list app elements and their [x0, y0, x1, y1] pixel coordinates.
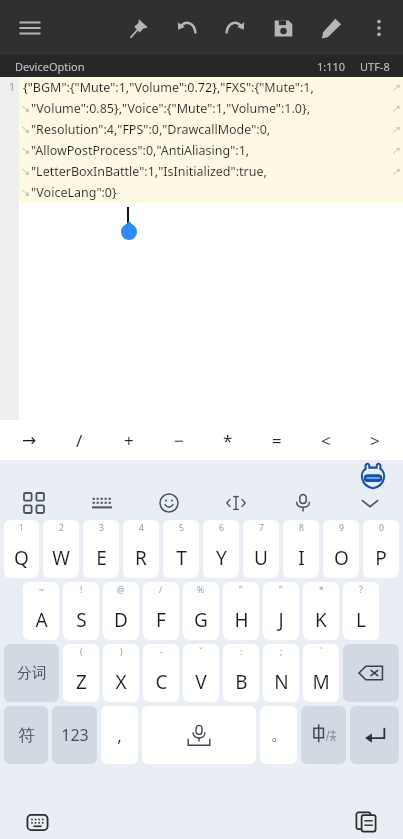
- button[interactable]: /: [54, 420, 104, 460]
- button[interactable]: ,: [101, 706, 138, 764]
- button[interactable]: Voice input: [269, 486, 336, 520]
- button[interactable]: 。: [260, 706, 297, 764]
- staticText: *: [319, 584, 324, 596]
- staticText: Q: [14, 545, 29, 571]
- button[interactable]: ": [263, 582, 299, 640]
- staticText: +: [124, 429, 134, 452]
- staticText: "Volume":0.85},"Voice":{"Mute":1,"Volume…: [31, 100, 311, 117]
- staticText: →: [22, 430, 37, 450]
- button[interactable]: →: [4, 420, 54, 460]
- button[interactable]: Keyboard layout: [68, 486, 135, 520]
- button[interactable]: ;: [263, 644, 299, 702]
- staticText: M: [312, 669, 330, 695]
- button[interactable]: 8: [283, 520, 319, 578]
- button[interactable]: =: [252, 420, 301, 460]
- staticText: 7: [259, 522, 264, 534]
- button[interactable]: ˇ: [183, 644, 219, 702]
- staticText: *: [223, 429, 233, 452]
- staticText: B: [235, 669, 248, 695]
- staticText: ;: [280, 646, 283, 658]
- staticText: H: [234, 607, 249, 633]
- button[interactable]: -: [143, 644, 179, 702]
- staticText: <: [321, 429, 331, 452]
- button[interactable]: %: [183, 582, 219, 640]
- button[interactable]: Enter: [350, 706, 399, 764]
- staticText: 9: [339, 522, 344, 534]
- button[interactable]: *: [303, 582, 339, 640]
- button[interactable]: Backspace: [343, 644, 399, 702]
- button[interactable]: 0: [363, 520, 399, 578]
- button[interactable]: ": [223, 582, 259, 640]
- staticText: 6: [219, 522, 224, 534]
- staticText: 。: [271, 725, 287, 745]
- staticText: V: [195, 669, 207, 695]
- staticText: U: [254, 545, 268, 571]
- button[interactable]: 4: [123, 520, 159, 578]
- button[interactable]: ?: [343, 582, 379, 640]
- staticText: 3: [99, 522, 104, 534]
- button[interactable]: Text editing: [202, 486, 269, 520]
- button[interactable]: +: [104, 420, 154, 460]
- staticText: L: [356, 607, 366, 633]
- staticText: S: [76, 607, 87, 633]
- button[interactable]: 7: [243, 520, 279, 578]
- button[interactable]: /: [143, 582, 179, 640]
- button[interactable]: *: [203, 420, 252, 460]
- button[interactable]: <: [301, 420, 350, 460]
- button[interactable]: Pin: [115, 5, 163, 51]
- staticText: ): [120, 646, 123, 658]
- button[interactable]: Space: [142, 706, 256, 764]
- button[interactable]: 符: [4, 706, 48, 764]
- button[interactable]: 5: [163, 520, 199, 578]
- button[interactable]: >: [350, 420, 399, 460]
- button[interactable]: :: [223, 644, 259, 702]
- staticText: 2: [59, 522, 64, 534]
- button[interactable]: 3: [83, 520, 119, 578]
- button[interactable]: 6: [203, 520, 239, 578]
- button[interactable]: Emoji: [135, 486, 202, 520]
- button[interactable]: Keyboard: [22, 807, 52, 837]
- staticText: 1: [19, 522, 24, 534]
- staticText: !: [80, 584, 83, 596]
- button[interactable]: 1: [4, 520, 39, 578]
- staticText: 1: [9, 80, 16, 94]
- staticText: =: [272, 429, 282, 452]
- staticText: >: [370, 429, 380, 452]
- button[interactable]: 9: [323, 520, 359, 578]
- staticText: R: [135, 545, 147, 571]
- staticText: E: [96, 545, 107, 571]
- button[interactable]: Save: [259, 5, 307, 51]
- button[interactable]: Menu: [6, 4, 54, 52]
- button[interactable]: Redo: [211, 5, 259, 51]
- button[interactable]: Switch Chinese English: [301, 706, 346, 764]
- button[interactable]: More options: [355, 5, 403, 51]
- button[interactable]: 分词: [4, 644, 59, 702]
- button[interactable]: !: [63, 582, 99, 640]
- button[interactable]: Undo: [163, 5, 211, 51]
- button[interactable]: Assistant: [359, 462, 387, 490]
- button[interactable]: 123: [52, 706, 97, 764]
- staticText: I: [298, 545, 305, 571]
- button[interactable]: (: [63, 644, 99, 702]
- staticText: N: [274, 669, 289, 695]
- staticText: Y: [216, 545, 227, 571]
- button[interactable]: `: [303, 644, 339, 702]
- button[interactable]: Recent apps: [351, 807, 381, 837]
- staticText: `: [320, 646, 323, 658]
- staticText: A: [35, 607, 48, 633]
- staticText: :: [240, 646, 243, 658]
- staticText: ~: [39, 584, 44, 596]
- staticText: X: [115, 669, 127, 695]
- button[interactable]: Apps: [0, 486, 68, 520]
- staticText: 分词: [17, 664, 47, 683]
- button[interactable]: −: [154, 420, 203, 460]
- staticText: 1:110: [317, 59, 346, 74]
- button[interactable]: ): [103, 644, 139, 702]
- button[interactable]: 2: [43, 520, 79, 578]
- button[interactable]: Edit: [307, 5, 355, 51]
- button[interactable]: @: [103, 582, 139, 640]
- staticText: 符: [18, 725, 35, 746]
- staticText: UTF-8: [360, 59, 390, 74]
- button[interactable]: ~: [23, 582, 59, 640]
- button[interactable]: Hide keyboard: [336, 486, 403, 520]
